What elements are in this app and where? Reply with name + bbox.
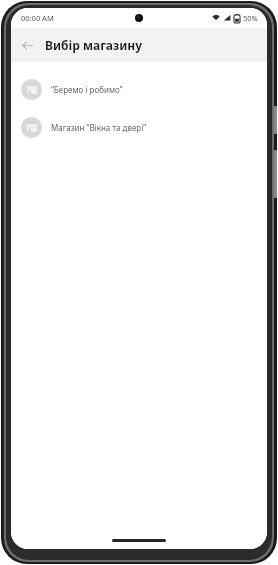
button[interactable]: Back xyxy=(15,33,39,57)
button[interactable]: “Беремо і робимо” xyxy=(11,70,267,108)
staticText: 50% xyxy=(243,13,258,23)
staticText: Вибір магазину xyxy=(45,37,142,53)
staticText: Магазин “Вікна та двері” xyxy=(51,122,147,133)
button[interactable]: Магазин “Вікна та двері” xyxy=(11,108,267,146)
staticText: “Беремо і робимо” xyxy=(51,84,123,95)
staticText: 00:00 AM xyxy=(21,13,54,23)
